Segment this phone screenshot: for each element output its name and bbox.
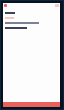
button[interactable]: Logo (4, 4, 7, 7)
